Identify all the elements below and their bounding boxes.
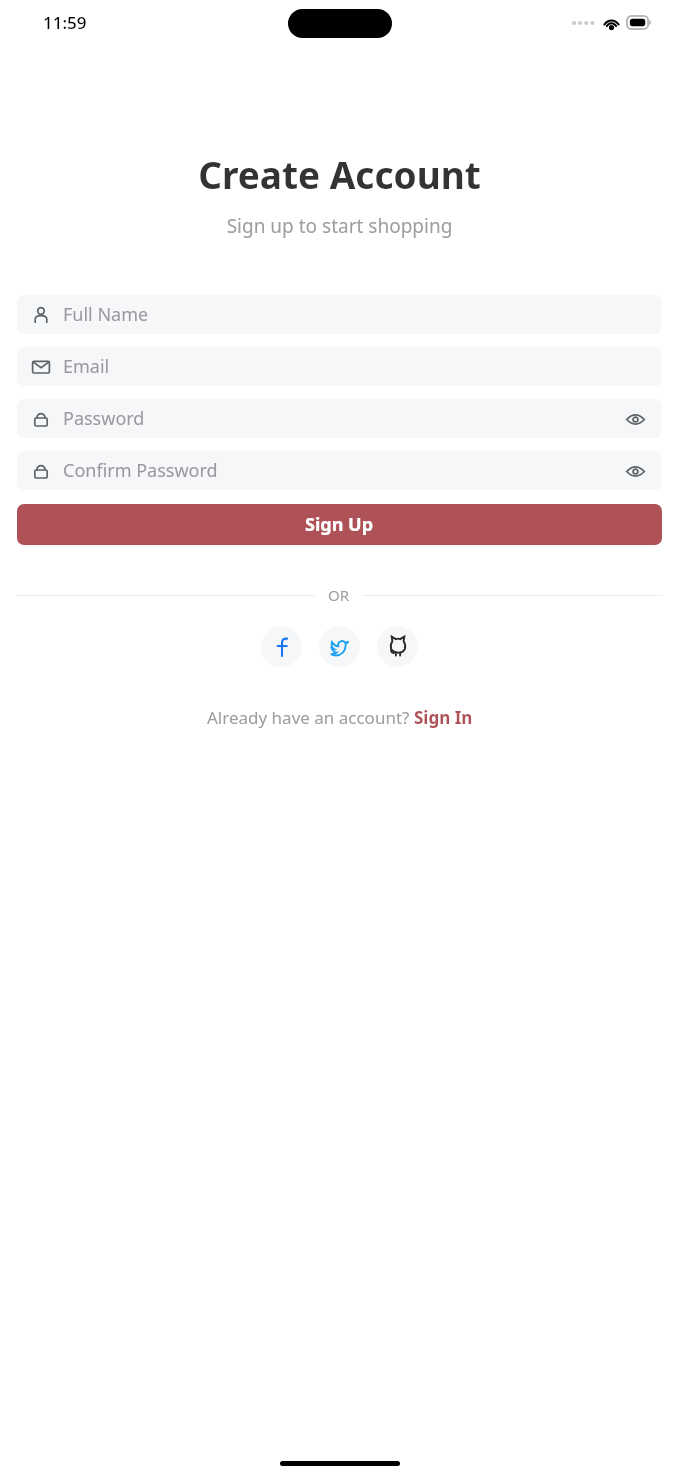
staticText: Email bbox=[63, 354, 648, 379]
staticText: Password bbox=[63, 406, 622, 431]
staticText: Sign Up bbox=[305, 512, 374, 537]
staticText: Confirm Password bbox=[63, 458, 622, 483]
button[interactable]: Sign up with Twitter bbox=[319, 626, 360, 667]
staticText: Create Account bbox=[0, 149, 679, 199]
button[interactable]: Email bbox=[17, 347, 662, 386]
button[interactable]: Confirm Password bbox=[17, 451, 662, 490]
staticText: OR bbox=[328, 585, 350, 605]
staticText: Full Name bbox=[63, 302, 648, 327]
staticText: Sign In bbox=[414, 706, 473, 729]
button[interactable]: Toggle password visibility bbox=[622, 458, 648, 484]
button[interactable]: Full Name bbox=[17, 295, 662, 334]
button[interactable]: Password bbox=[17, 399, 662, 438]
button[interactable]: Sign up with GitHub bbox=[377, 626, 418, 667]
staticText: Already have an account? bbox=[207, 706, 414, 729]
button[interactable]: Sign up with Facebook bbox=[261, 626, 302, 667]
staticText: 11:59 bbox=[43, 11, 87, 34]
staticText: Sign up to start shopping bbox=[0, 213, 679, 239]
button[interactable]: Sign Up bbox=[17, 504, 662, 545]
button[interactable]: Already have an account? bbox=[207, 706, 473, 729]
button[interactable]: Toggle password visibility bbox=[622, 406, 648, 432]
